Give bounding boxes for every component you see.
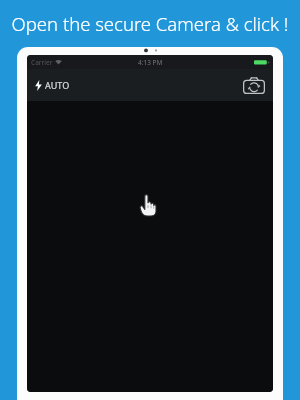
staticText: AUTO: [45, 79, 70, 91]
button[interactable]: Switch camera: [242, 73, 266, 97]
button[interactable]: AUTO: [32, 75, 73, 95]
staticText: Carrier: [31, 58, 53, 67]
button[interactable]: Camera viewfinder: [27, 101, 273, 392]
staticText: Open the secure Camera & click !: [0, 11, 300, 36]
staticText: 4:13 PM: [138, 58, 163, 67]
